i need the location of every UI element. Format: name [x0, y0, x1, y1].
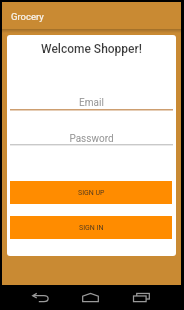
staticText: Welcome Shopper!: [7, 42, 176, 56]
staticText: SIGN UP: [78, 189, 105, 197]
button[interactable]: Back: [23, 285, 58, 310]
staticText: Email: [7, 97, 176, 109]
button[interactable]: Recent apps: [124, 285, 159, 310]
staticText: Grocery: [11, 11, 44, 22]
button[interactable]: Home: [73, 285, 108, 310]
button[interactable]: SIGN UP: [10, 181, 172, 204]
staticText: Password: [7, 133, 176, 145]
button[interactable]: SIGN IN: [10, 216, 172, 239]
staticText: SIGN IN: [79, 224, 104, 232]
